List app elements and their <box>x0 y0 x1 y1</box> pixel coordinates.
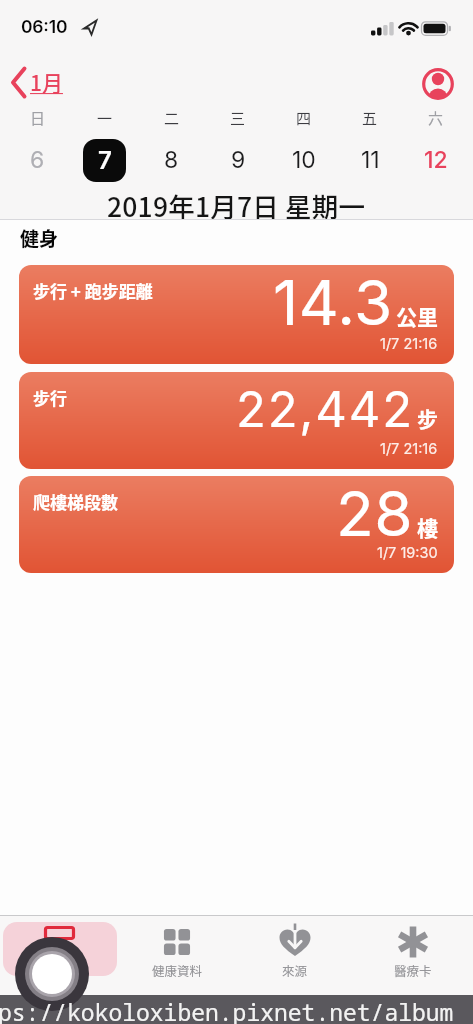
staticText: 今天 <box>46 961 72 979</box>
button[interactable]: 步行 <box>19 372 454 469</box>
button[interactable]: 來源 <box>236 916 354 995</box>
button[interactable]: 1月 <box>10 67 63 97</box>
staticText: 三 <box>230 107 246 129</box>
staticText: 6 <box>30 146 45 174</box>
button[interactable]: 步行 + 跑步距離 <box>19 265 454 364</box>
button[interactable]: 爬樓梯段數 <box>19 476 454 573</box>
staticText: 1/7 21:16 <box>380 440 438 458</box>
staticText: 日 <box>30 107 46 129</box>
staticText: 14.3 <box>273 265 393 340</box>
staticText: 五 <box>362 107 378 129</box>
staticText: 9 <box>231 146 246 174</box>
staticText: 步 <box>417 403 438 433</box>
staticText: 11 <box>361 146 380 174</box>
staticText: 1月 <box>30 67 63 97</box>
staticText: 一 <box>97 107 113 129</box>
staticText: 06:10 <box>21 16 68 37</box>
staticText: 醫療卡 <box>394 961 432 979</box>
staticText: 10 <box>292 146 316 174</box>
staticText: 步行 + 跑步距離 <box>33 278 153 303</box>
staticText: 六 <box>428 107 444 129</box>
staticText: 四 <box>296 107 312 129</box>
button[interactable]: 7 <box>83 139 126 182</box>
button[interactable]: 今天 <box>0 916 118 995</box>
staticText: 步行 <box>33 385 67 410</box>
staticText: 7 <box>98 146 112 175</box>
staticText: 健康資料 <box>152 961 203 979</box>
staticText: 公里 <box>396 301 438 331</box>
staticText: 健身 <box>20 224 59 252</box>
staticText: 12 <box>424 146 448 174</box>
staticText: 1/7 21:16 <box>380 335 438 353</box>
staticText: 1/7 19:30 <box>377 544 438 562</box>
staticText: 28 <box>336 476 414 551</box>
staticText: 爬樓梯段數 <box>33 489 118 514</box>
staticText: 來源 <box>282 961 308 979</box>
button[interactable] <box>418 65 452 99</box>
staticText: 2019年1月7日 星期一 <box>107 186 366 212</box>
button[interactable]: 醫療卡 <box>354 916 472 995</box>
staticText: ps://kokoloxiben.pixnet.net/album <box>0 996 454 1024</box>
staticText: 二 <box>164 107 180 129</box>
button[interactable]: 健康資料 <box>118 916 236 995</box>
staticText: 8 <box>164 146 179 174</box>
staticText: 22,442 <box>236 380 414 439</box>
staticText: 樓 <box>417 512 438 542</box>
